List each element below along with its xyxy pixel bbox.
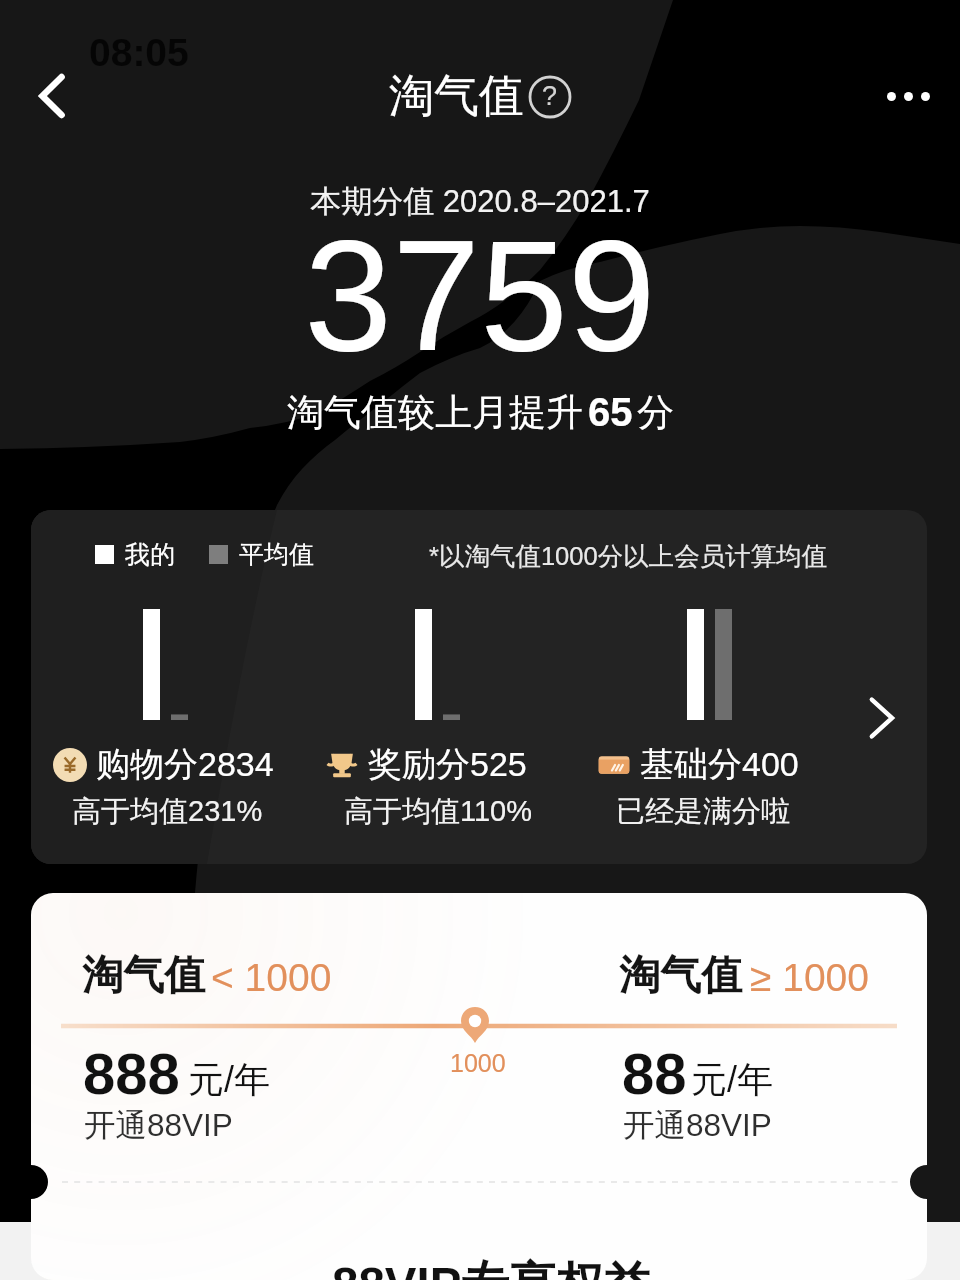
- staticText: 高于均值231%: [72, 793, 263, 830]
- staticText: 分: [637, 389, 674, 436]
- staticText: 本期分值 2020.8–2021.7: [0, 182, 960, 221]
- button[interactable]: 我的: [31, 510, 927, 864]
- staticText: < 1000: [211, 956, 332, 1000]
- staticText: 08:05: [89, 31, 189, 75]
- button[interactable]: More options: [887, 60, 930, 132]
- staticText: 淘气值: [389, 68, 524, 125]
- staticText: 3759: [0, 207, 960, 384]
- staticText: 88: [622, 1041, 687, 1106]
- staticText: 淘气值: [619, 950, 742, 1002]
- staticText: ?: [542, 81, 558, 111]
- staticText: 开通88VIP: [84, 1106, 233, 1146]
- staticText: 开通88VIP: [623, 1106, 772, 1146]
- staticText: 888: [83, 1041, 180, 1106]
- staticText: 基础分400: [640, 743, 799, 786]
- staticText: ≥ 1000: [750, 956, 869, 1000]
- button[interactable]: 淘气值: [389, 68, 572, 125]
- button[interactable]: See more: [858, 695, 904, 741]
- staticText: 我的: [125, 539, 175, 570]
- other: Help: [528, 75, 572, 119]
- staticText: 奖励分525: [368, 743, 527, 786]
- staticText: 平均值: [239, 539, 314, 570]
- button[interactable]: Back: [10, 60, 94, 132]
- staticText: 元/年: [691, 1057, 774, 1102]
- staticText: 高于均值110%: [344, 793, 533, 830]
- staticText: 1000: [450, 1049, 506, 1077]
- staticText: 已经是满分啦: [616, 793, 790, 830]
- staticText: 65: [588, 390, 633, 435]
- staticText: 元/年: [188, 1057, 271, 1102]
- staticText: 淘气值: [82, 950, 205, 1002]
- staticText: 淘气值较上月提升: [287, 389, 583, 436]
- staticText: 购物分2834: [96, 743, 274, 786]
- staticText: 88VIP专享权益: [332, 1255, 652, 1280]
- staticText: *以淘气值1000分以上会员计算均值: [429, 540, 828, 572]
